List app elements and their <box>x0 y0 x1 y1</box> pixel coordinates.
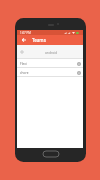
button[interactable]: Back <box>19 35 28 45</box>
staticText: Flexi <box>20 62 27 66</box>
staticText: Teams <box>32 37 46 43</box>
button[interactable]: Flexi <box>17 59 83 68</box>
button[interactable]: Home <box>43 151 59 157</box>
button[interactable]: chore <box>17 68 83 77</box>
button[interactable]: Settings <box>74 59 83 68</box>
staticText: android <box>45 50 58 54</box>
staticText: 1:07 PM <box>20 31 31 35</box>
button[interactable]: Add team <box>17 45 83 59</box>
button[interactable]: Settings <box>74 68 83 77</box>
staticText: chore <box>20 71 29 75</box>
button[interactable]: Add team <box>17 45 26 59</box>
